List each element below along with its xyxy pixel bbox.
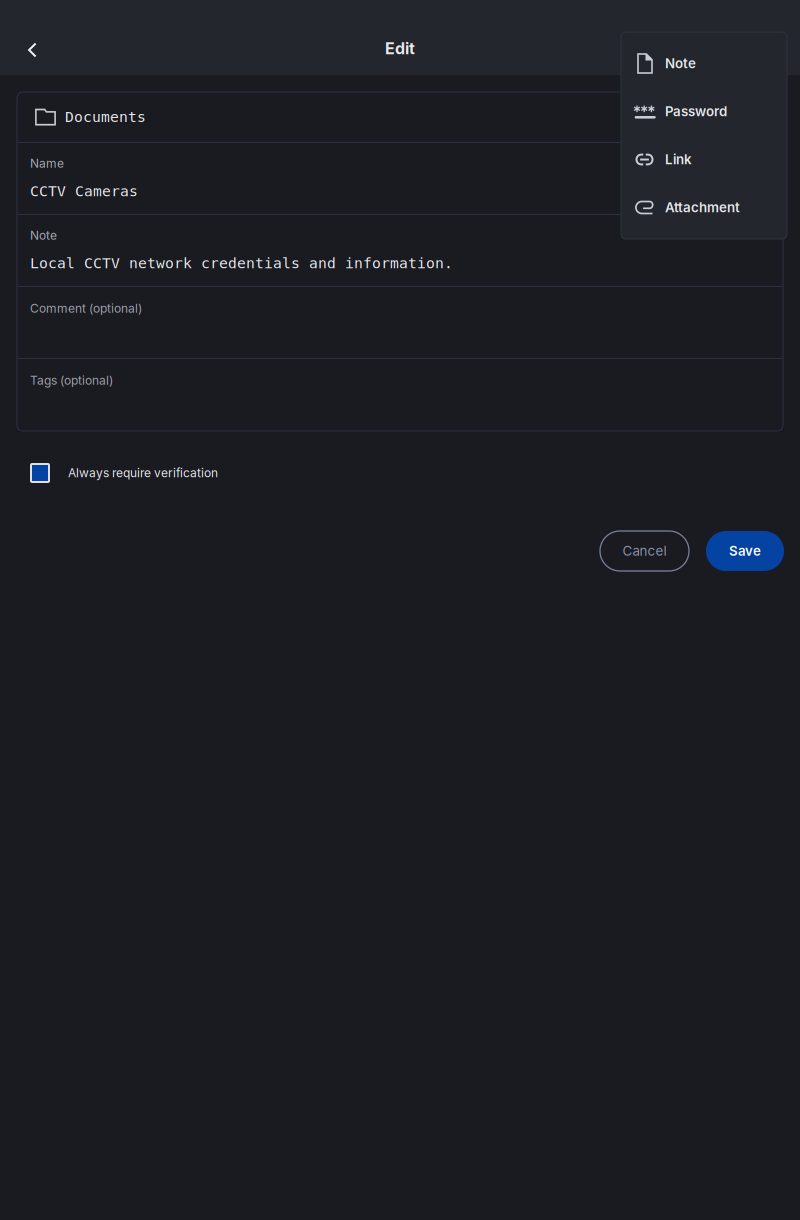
button[interactable]: Note	[621, 39, 787, 87]
staticText: Tags (optional)	[30, 373, 113, 387]
staticText: Comment (optional)	[30, 301, 142, 315]
button[interactable]: Attachment	[621, 183, 787, 231]
staticText: Local CCTV network credentials and infor…	[30, 254, 453, 272]
staticText: Edit	[385, 39, 415, 58]
button[interactable]: Always require verification	[0, 457, 800, 489]
staticText: Name	[30, 156, 64, 170]
staticText: CCTV Cameras	[30, 182, 138, 200]
button[interactable]: Link	[621, 135, 787, 183]
button[interactable]: Password	[621, 87, 787, 135]
staticText: Save	[729, 543, 761, 559]
staticText: Password	[665, 103, 727, 119]
staticText: Cancel	[622, 543, 666, 559]
staticText: Link	[665, 151, 692, 167]
staticText: Always require verification	[68, 466, 218, 480]
button[interactable]: Back	[9, 26, 53, 70]
button[interactable]: Save	[706, 531, 784, 571]
staticText: Note	[665, 55, 696, 71]
staticText: Attachment	[665, 199, 740, 215]
button[interactable]: Cancel	[600, 531, 689, 571]
staticText: Documents	[65, 108, 146, 126]
staticText: Note	[30, 228, 57, 242]
